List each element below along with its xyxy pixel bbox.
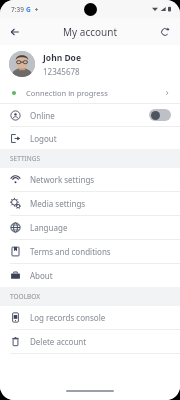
button[interactable]: Refresh xyxy=(155,22,175,42)
staticText: 7:39 xyxy=(11,5,24,14)
staticText: 12345678 xyxy=(43,66,80,77)
button[interactable]: Log records console xyxy=(0,306,180,329)
staticText: Delete account xyxy=(30,336,87,347)
button[interactable]: Back xyxy=(5,22,25,42)
staticText: Log records console xyxy=(30,312,106,323)
staticText: SETTINGS xyxy=(10,154,40,163)
staticText: TOOLBOX xyxy=(10,292,41,301)
staticText: Logout xyxy=(30,133,57,144)
staticText: John Doe xyxy=(43,52,81,64)
button[interactable]: Connection in progress xyxy=(0,83,180,103)
button[interactable]: Media settings xyxy=(0,192,180,215)
button[interactable]: Delete account xyxy=(0,330,180,353)
staticText: Network settings xyxy=(30,174,95,185)
staticText: Online xyxy=(30,110,55,121)
button[interactable]: About xyxy=(0,264,180,287)
button[interactable]: Online xyxy=(0,104,180,126)
staticText: My account xyxy=(63,25,117,39)
button[interactable]: Terms and conditions xyxy=(0,240,180,263)
staticText: Connection in progress xyxy=(26,88,108,98)
staticText: Terms and conditions xyxy=(30,246,111,257)
button[interactable]: John Doe xyxy=(0,45,180,83)
button[interactable]: Network settings xyxy=(0,168,180,191)
staticText: Language xyxy=(30,222,68,233)
button[interactable]: Logout xyxy=(0,127,180,149)
button[interactable]: Language xyxy=(0,216,180,239)
staticText: G xyxy=(26,5,31,14)
button[interactable]: Online toggle xyxy=(149,109,171,121)
staticText: Media settings xyxy=(30,198,86,209)
staticText: About xyxy=(30,270,53,281)
